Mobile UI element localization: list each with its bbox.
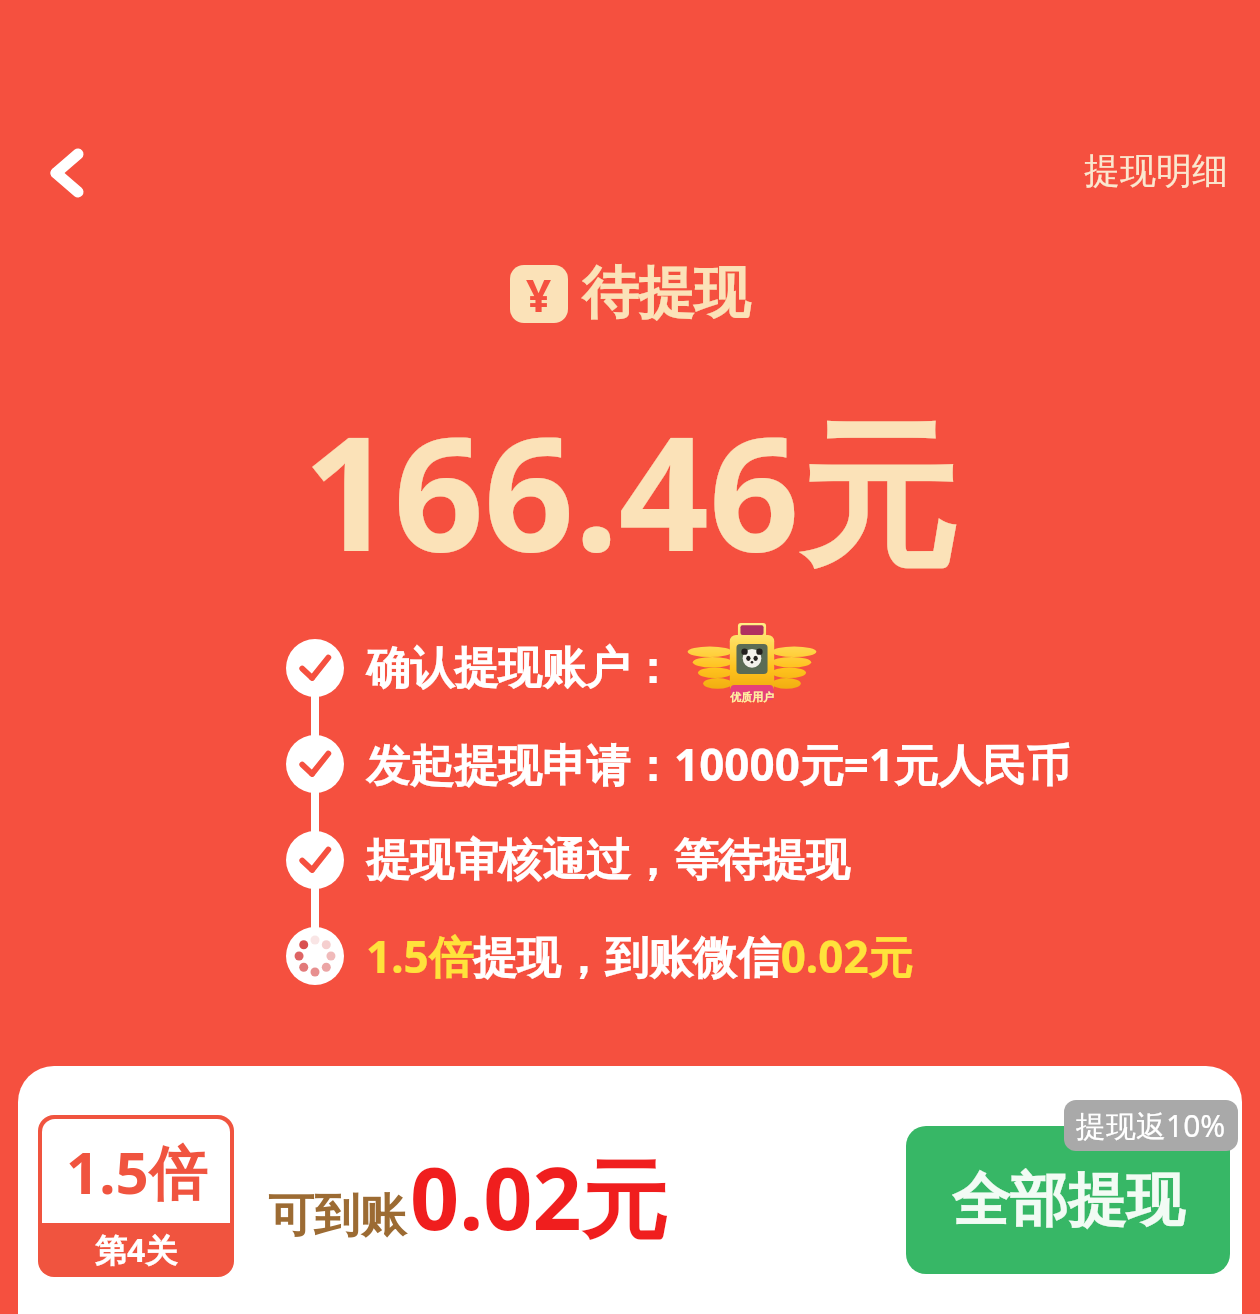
staticText: 0.02元 (410, 1138, 668, 1255)
staticText: 提现返10% (1076, 1105, 1226, 1146)
button[interactable]: Back (24, 130, 110, 216)
staticText: 发起提现申请：10000元=1元人民币 (366, 734, 1071, 794)
staticText: 第4关 (95, 1228, 178, 1272)
button[interactable]: 提现返10% (1064, 1100, 1238, 1151)
staticText: 全部提现 (952, 1164, 1184, 1237)
staticText: 提现审核通过，等待提现 (366, 833, 850, 888)
staticText: ¥ (526, 265, 552, 323)
staticText: 提现明细 (1084, 148, 1228, 193)
staticText: 优质用户 (730, 690, 774, 704)
staticText: 待提现 (582, 258, 750, 329)
staticText: 1.5倍 (66, 1132, 207, 1211)
staticText: 1.5倍提现，到账微信0.02元 (366, 926, 913, 986)
button[interactable]: 全部提现 (906, 1126, 1230, 1274)
button[interactable]: 提现明细 (1070, 140, 1242, 201)
button[interactable]: 1.5倍 (38, 1115, 234, 1277)
staticText: 166.46元 (303, 382, 958, 598)
staticText: 可到账 (268, 1187, 406, 1245)
staticText: 确认提现账户： (366, 641, 674, 696)
